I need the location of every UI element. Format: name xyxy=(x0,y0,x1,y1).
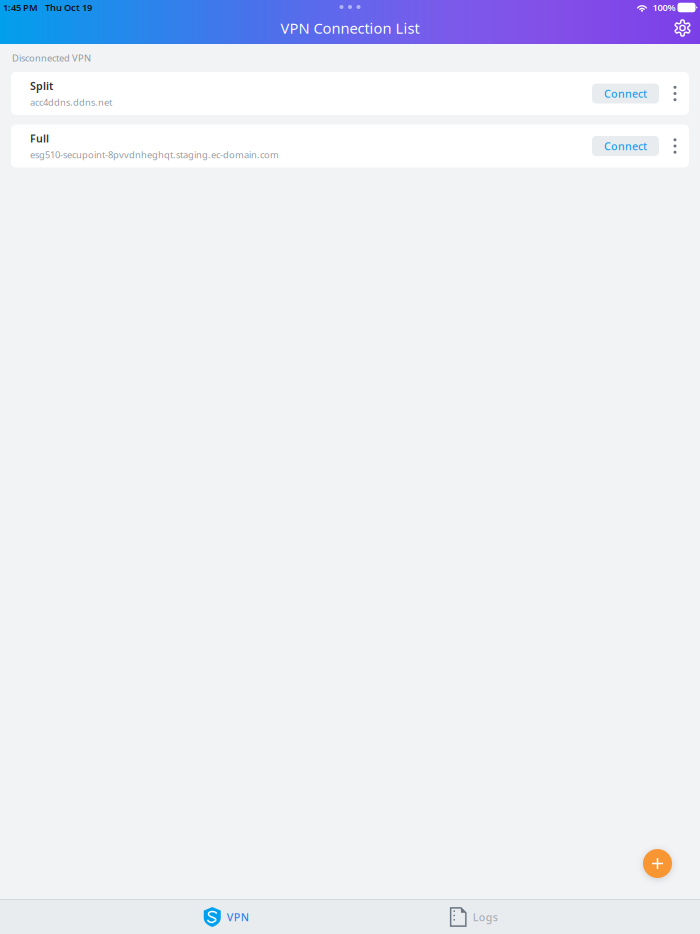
staticText: Full xyxy=(30,131,49,145)
button[interactable]: Connect xyxy=(592,136,659,156)
button[interactable]: Add VPN connection xyxy=(643,849,672,878)
button[interactable]: More options xyxy=(664,125,686,167)
button[interactable]: Split xyxy=(11,72,592,115)
staticText: 1:45 PM xyxy=(3,1,38,14)
staticText: acc4ddns.ddns.net xyxy=(30,96,112,108)
staticText: Split xyxy=(30,79,53,93)
button[interactable]: More options xyxy=(664,72,686,114)
button[interactable]: Connect xyxy=(592,83,659,103)
staticText: VPN xyxy=(227,910,249,924)
staticText: Logs xyxy=(473,910,498,924)
button[interactable]: Settings xyxy=(674,19,691,36)
button[interactable]: Full xyxy=(11,124,592,167)
staticText: VPN Connection List xyxy=(280,18,419,38)
staticText: esg510-secupoint-8pvvdnheghqt.staging.ec… xyxy=(30,148,279,161)
staticText: Connect xyxy=(604,139,647,153)
staticText: Disconnected VPN xyxy=(12,52,91,64)
staticText: Connect xyxy=(604,86,647,101)
button[interactable]: VPN xyxy=(102,900,350,934)
staticText: 100% xyxy=(652,1,675,14)
button[interactable]: Logs xyxy=(350,900,597,934)
staticText: Thu Oct 19 xyxy=(45,1,92,14)
